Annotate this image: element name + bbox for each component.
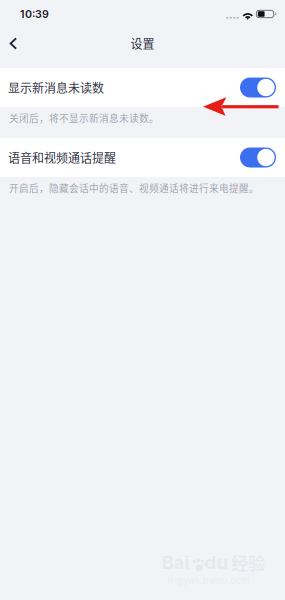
button[interactable]: 显示新消息未读数 [0,68,285,107]
staticText: du [204,551,228,573]
staticText: 关闭后，将不显示新消息未读数。 [9,111,159,125]
button[interactable]: 显示新消息未读数开关 [240,147,276,167]
staticText: 开启后，隐藏会话中的语音、视频通话将进行来电提醒。 [9,181,259,195]
staticText: 10:39 [20,7,49,20]
button[interactable]: 语音和视频通话提醒 [0,138,285,177]
staticText: 设置 [130,35,154,52]
staticText: 显示新消息未读数 [8,79,104,96]
staticText: Bai [161,551,189,573]
button[interactable]: 显示新消息未读数开关 [240,77,276,97]
button[interactable]: Back [0,30,28,57]
staticText: 语音和视频通话提醒 [8,149,116,166]
staticText: 经验 [231,550,265,575]
